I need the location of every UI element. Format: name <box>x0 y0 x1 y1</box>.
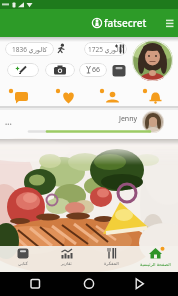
button[interactable]: المفكرة <box>89 246 134 272</box>
staticText: تقارير <box>61 261 72 266</box>
button[interactable] <box>54 86 83 106</box>
button[interactable] <box>7 63 39 77</box>
button[interactable] <box>141 86 170 106</box>
button[interactable] <box>80 275 98 293</box>
button[interactable] <box>26 275 44 293</box>
staticText: كالوري 1725 <box>88 45 124 54</box>
button[interactable] <box>130 275 148 293</box>
button[interactable] <box>132 40 173 81</box>
button[interactable]: ... <box>0 110 178 139</box>
button[interactable]: الصفحة الرئيسية <box>133 246 178 272</box>
staticText: fatsecret <box>104 16 147 30</box>
staticText: ... <box>5 116 12 127</box>
button[interactable] <box>112 64 126 77</box>
button[interactable]: كتابي <box>0 246 45 272</box>
button[interactable] <box>7 86 36 106</box>
button[interactable]: كالوري 1725 <box>84 42 127 56</box>
staticText: Jenny <box>119 114 138 124</box>
staticText: المفكرة <box>104 261 119 266</box>
button[interactable]: تقارير <box>44 246 89 272</box>
button[interactable]: كالوري 1836 <box>5 42 54 56</box>
button[interactable] <box>98 86 127 106</box>
staticText: كالوري 1836 <box>12 45 48 54</box>
button[interactable]: 66 <box>79 63 107 77</box>
staticText: 66 <box>92 65 101 75</box>
staticText: كتابي <box>18 261 28 266</box>
button[interactable] <box>45 63 75 77</box>
staticText: الصفحة الرئيسية <box>140 261 171 267</box>
button[interactable] <box>160 14 178 32</box>
